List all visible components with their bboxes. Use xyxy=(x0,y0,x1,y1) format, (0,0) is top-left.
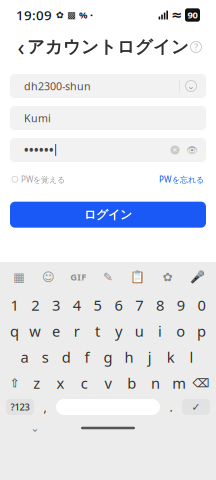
button[interactable]: ログイン xyxy=(10,202,206,228)
button[interactable]: パスワードを表示 xyxy=(184,138,200,162)
button[interactable]: 9 xyxy=(170,292,191,318)
staticText: 🎤 xyxy=(190,270,205,284)
staticText: 0 xyxy=(198,295,206,315)
button[interactable]: s xyxy=(35,344,56,370)
staticText: ⌫ xyxy=(192,376,209,390)
button[interactable]: 🎤 xyxy=(182,264,212,290)
button[interactable]: e xyxy=(46,318,66,344)
staticText: m xyxy=(172,373,186,393)
staticText: 2 xyxy=(31,295,39,315)
button[interactable]: o xyxy=(170,318,191,344)
staticText: i xyxy=(158,321,162,341)
button[interactable]: 8 xyxy=(150,292,170,318)
button[interactable]: z xyxy=(25,370,49,396)
staticText: ✿ xyxy=(162,270,172,284)
staticText: t xyxy=(95,321,100,341)
button[interactable]: 3 xyxy=(46,292,66,318)
button[interactable]: 戻る xyxy=(8,34,34,60)
button[interactable]: j xyxy=(139,344,160,370)
button[interactable]: ✿ xyxy=(153,264,182,290)
staticText: 9 xyxy=(177,295,185,315)
button[interactable]: ?123 xyxy=(6,399,34,415)
button[interactable]: ▦ xyxy=(4,264,34,290)
button[interactable]: a xyxy=(14,344,35,370)
button[interactable]: アカウント選択 xyxy=(180,74,202,98)
button[interactable]: 1 xyxy=(4,292,25,318)
button[interactable]: ヘルプ xyxy=(184,35,208,59)
button[interactable]: b xyxy=(120,370,144,396)
staticText: ✎ xyxy=(103,270,113,284)
button[interactable]: c xyxy=(72,370,96,396)
staticText: ✿ xyxy=(56,10,64,20)
staticText: ▦ xyxy=(13,270,24,284)
button[interactable]: クリア xyxy=(166,138,184,162)
staticText: r xyxy=(74,321,80,341)
staticText: Kumi xyxy=(24,111,51,125)
staticText: ▩ xyxy=(67,10,76,20)
staticText: u xyxy=(135,321,144,341)
button[interactable]: 📋 xyxy=(123,264,153,290)
button[interactable]: q xyxy=(4,318,25,344)
button[interactable]: l xyxy=(181,344,202,370)
button[interactable]: g xyxy=(98,344,118,370)
button[interactable]: r xyxy=(66,318,87,344)
staticText: z xyxy=(33,373,40,393)
button[interactable]: x xyxy=(49,370,72,396)
button[interactable]: シフト xyxy=(5,370,25,396)
button[interactable]: スペース xyxy=(56,399,160,415)
staticText: a xyxy=(20,347,28,367)
button[interactable]: 5 xyxy=(87,292,108,318)
staticText: ? xyxy=(194,41,198,53)
button[interactable]: n xyxy=(144,370,167,396)
button[interactable]: u xyxy=(129,318,150,344)
staticText: , xyxy=(43,399,46,415)
staticText: g xyxy=(103,347,112,367)
staticText: e xyxy=(52,321,60,341)
button[interactable]: y xyxy=(108,318,129,344)
button[interactable]: GIF xyxy=(63,264,93,290)
staticText: ✕ xyxy=(172,146,178,154)
button[interactable]: キーボードを閉じる xyxy=(24,419,46,437)
button[interactable]: k xyxy=(160,344,181,370)
staticText: · xyxy=(90,8,93,22)
button[interactable]: ピリオド xyxy=(164,399,178,415)
staticText: ‹ xyxy=(17,32,24,62)
staticText: h xyxy=(124,347,133,367)
button[interactable]: PWを忘れる xyxy=(159,171,204,188)
button[interactable]: 0 xyxy=(191,292,212,318)
button[interactable]: i xyxy=(150,318,170,344)
staticText: f xyxy=(85,347,90,367)
staticText: ログイン xyxy=(84,207,132,222)
button[interactable]: ✎ xyxy=(93,264,123,290)
button[interactable]: p xyxy=(191,318,212,344)
button[interactable]: 2 xyxy=(25,292,46,318)
button[interactable]: v xyxy=(96,370,120,396)
staticText: ≈ xyxy=(171,7,182,22)
button[interactable]: t xyxy=(87,318,108,344)
staticText: w xyxy=(29,321,41,341)
button[interactable]: w xyxy=(25,318,46,344)
staticText: . xyxy=(169,399,172,415)
staticText: ?123 xyxy=(10,401,29,413)
button[interactable]: h xyxy=(118,344,139,370)
staticText: 👁 xyxy=(186,145,198,155)
button[interactable]: m xyxy=(167,370,191,396)
staticText: o xyxy=(176,321,185,341)
button[interactable]: d xyxy=(56,344,77,370)
staticText: d xyxy=(62,347,71,367)
button[interactable]: 完了 xyxy=(182,399,210,415)
staticText: ⇧ xyxy=(10,376,20,390)
button[interactable]: カンマ xyxy=(38,399,52,415)
button[interactable]: 6 xyxy=(108,292,129,318)
staticText: 90 xyxy=(187,9,197,21)
button[interactable]: f xyxy=(77,344,98,370)
button[interactable]: PWを覚える xyxy=(12,171,65,188)
button[interactable]: ☺ xyxy=(34,264,63,290)
button[interactable]: 削除 xyxy=(191,370,211,396)
button[interactable]: 7 xyxy=(129,292,150,318)
staticText: ⌄ xyxy=(30,422,39,434)
button[interactable]: 4 xyxy=(66,292,87,318)
staticText: 5 xyxy=(94,295,102,315)
staticText: 📋 xyxy=(130,270,145,284)
staticText: アカウントログイン xyxy=(27,36,189,58)
